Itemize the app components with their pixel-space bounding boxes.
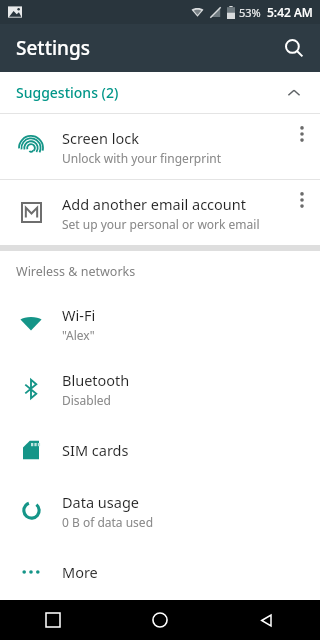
button[interactable]: More options [284, 114, 320, 179]
staticText: Disabled [62, 392, 111, 408]
button[interactable]: More options [284, 180, 320, 245]
staticText: Data usage [62, 492, 139, 512]
staticText: Add another email account [62, 194, 246, 214]
staticText: Unlock with your fingerprint [62, 150, 222, 166]
button[interactable]: Suggestions (2) [0, 72, 320, 113]
staticText: Settings [16, 35, 90, 61]
button[interactable]: Bluetooth [0, 356, 320, 421]
staticText: Suggestions (2) [16, 83, 119, 102]
staticText: 53% [239, 5, 261, 20]
staticText: Bluetooth [62, 370, 130, 390]
button[interactable]: Back [213, 600, 320, 640]
staticText: Wi-Fi [62, 305, 96, 325]
staticText: More [62, 562, 98, 582]
button[interactable]: Recents [0, 600, 106, 640]
button[interactable]: Data usage [0, 478, 320, 543]
button[interactable]: Add another email account [0, 180, 320, 245]
staticText: 0 B of data used [62, 514, 154, 530]
button[interactable]: SIM cards [0, 421, 320, 478]
staticText: Screen lock [62, 128, 139, 148]
button[interactable]: Home [106, 600, 213, 640]
staticText: Wireless & networks [16, 263, 136, 280]
staticText: 5:42 AM [267, 4, 313, 20]
button[interactable]: Screen lock [0, 114, 320, 179]
staticText: Set up your personal or work email [62, 216, 260, 232]
button[interactable]: Wi-Fi [0, 291, 320, 356]
staticText: "Alex" [62, 327, 95, 343]
button[interactable]: More [0, 543, 320, 600]
staticText: SIM cards [62, 440, 129, 460]
button[interactable]: Search [274, 28, 314, 68]
